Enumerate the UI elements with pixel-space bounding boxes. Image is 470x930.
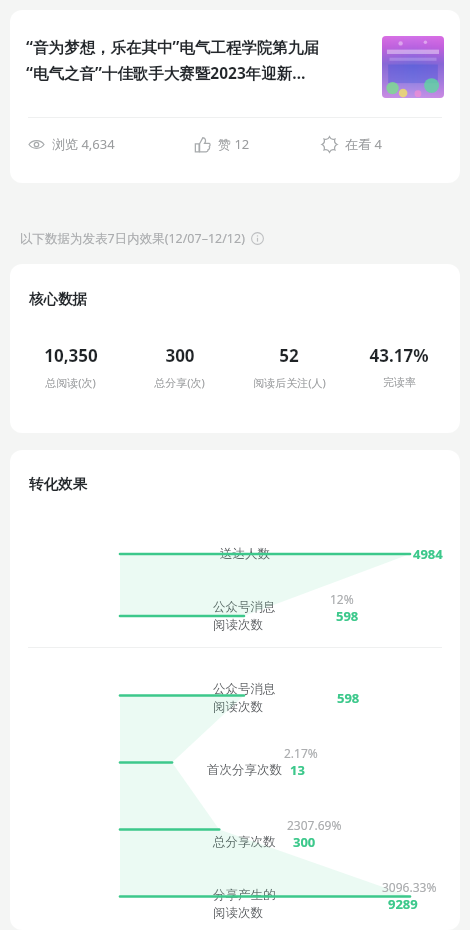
staticText: 总分享(次) <box>154 375 205 390</box>
staticText: 以下数据为发表7日内效果(12/07–12/12) <box>20 230 245 247</box>
staticText: 2.17% <box>284 745 318 761</box>
staticText: 12% <box>330 591 354 607</box>
staticText: 总分享次数 <box>213 834 276 850</box>
button[interactable]: 浏览 4,634 <box>28 135 194 153</box>
button[interactable]: 52 <box>234 344 344 390</box>
staticText: 13 <box>290 761 305 779</box>
button[interactable]: 300 <box>125 344 234 390</box>
other: Info <box>251 232 264 245</box>
staticText: 4984 <box>413 545 443 563</box>
staticText: 阅读后关注(人) <box>253 375 326 390</box>
staticText: 2307.69% <box>287 817 342 833</box>
staticText: 完读率 <box>383 375 416 389</box>
button[interactable]: 在看 4 <box>321 135 442 153</box>
staticText: 分享产生的 阅读次数 <box>213 887 276 921</box>
staticText: 转化效果 <box>29 475 87 493</box>
staticText: 在看 4 <box>345 135 382 153</box>
staticText: 598 <box>337 689 360 707</box>
staticText: 3096.33% <box>382 879 437 895</box>
staticText: “音为梦想，乐在其中”电气工程学院第九届 “电气之音”十佳歌手大赛暨2023年迎… <box>26 36 374 83</box>
staticText: 赞 12 <box>218 135 250 153</box>
staticText: 598 <box>336 607 359 625</box>
button[interactable]: 以下数据为发表7日内效果(12/07–12/12) <box>20 230 264 247</box>
button[interactable]: 43.17% <box>344 344 454 389</box>
staticText: 52 <box>279 344 299 367</box>
staticText: 首次分享次数 <box>207 762 282 778</box>
staticText: 核心数据 <box>29 290 87 308</box>
staticText: 总阅读(次) <box>45 375 96 390</box>
staticText: 浏览 4,634 <box>52 135 115 153</box>
staticText: 公众号消息 阅读次数 <box>213 599 276 633</box>
button[interactable]: “音为梦想，乐在其中”电气工程学院第九届 “电气之音”十佳歌手大赛暨2023年迎… <box>10 10 460 183</box>
staticText: 9289 <box>388 895 418 913</box>
staticText: 公众号消息 阅读次数 <box>213 681 276 715</box>
staticText: 送达人数 <box>220 546 270 562</box>
staticText: 43.17% <box>369 344 429 367</box>
staticText: 300 <box>293 833 316 851</box>
button[interactable]: 赞 12 <box>194 135 321 153</box>
staticText: 10,350 <box>44 344 98 367</box>
button[interactable]: 10,350 <box>16 344 125 390</box>
staticText: 300 <box>165 344 195 367</box>
